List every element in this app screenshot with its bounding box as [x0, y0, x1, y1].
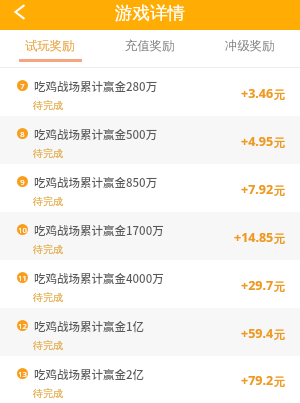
staticText: 吃鸡战场累计赢金280万 [34, 78, 158, 95]
staticText: 11 [18, 273, 27, 283]
button[interactable]: 9 [0, 164, 300, 212]
staticText: 试玩奖励 [25, 38, 75, 54]
staticText: 待完成 [33, 147, 63, 160]
button[interactable]: 11 [0, 260, 300, 308]
staticText: +59.4 [241, 325, 274, 342]
staticText: +7.92 [241, 181, 274, 198]
staticText: 元 [274, 232, 285, 246]
staticText: +4.95 [241, 133, 274, 150]
staticText: 待完成 [33, 243, 63, 256]
staticText: 待完成 [33, 99, 63, 112]
staticText: 吃鸡战场累计赢金1亿 [34, 318, 145, 335]
staticText: 元 [274, 280, 285, 294]
button[interactable]: 8 [0, 116, 300, 164]
staticText: 待完成 [33, 195, 63, 208]
staticText: 吃鸡战场累计赢金500万 [34, 126, 158, 143]
staticText: 充值奖励 [125, 38, 175, 54]
button[interactable]: 13 [0, 356, 300, 403]
staticText: 待完成 [33, 387, 63, 400]
staticText: +29.7 [241, 277, 274, 294]
staticText: 待完成 [33, 339, 63, 352]
button[interactable]: 冲级奖励 [200, 30, 300, 67]
button[interactable]: 7 [0, 68, 300, 116]
staticText: 元 [274, 375, 285, 389]
button[interactable]: 10 [0, 212, 300, 260]
staticText: 元 [274, 88, 285, 102]
staticText: 吃鸡战场累计赢金2亿 [34, 366, 145, 383]
staticText: 吃鸡战场累计赢金4000万 [34, 270, 164, 287]
staticText: 元 [274, 328, 285, 342]
button[interactable]: 试玩奖励 [0, 30, 100, 67]
staticText: +3.46 [241, 85, 274, 102]
button[interactable]: 12 [0, 308, 300, 356]
staticText: 8 [20, 129, 25, 139]
staticText: 元 [274, 184, 285, 198]
staticText: 13 [18, 369, 27, 379]
staticText: +14.85 [234, 229, 274, 246]
staticText: 待完成 [33, 291, 63, 304]
staticText: 7 [20, 81, 25, 91]
staticText: 12 [18, 321, 27, 331]
staticText: 游戏详情 [115, 2, 185, 24]
staticText: 元 [274, 136, 285, 150]
staticText: 冲级奖励 [225, 38, 275, 54]
staticText: +79.2 [241, 372, 274, 389]
staticText: 9 [20, 177, 25, 187]
button[interactable]: 充值奖励 [100, 30, 200, 67]
button[interactable]: Back [4, 0, 34, 30]
staticText: 10 [18, 225, 27, 235]
staticText: 吃鸡战场累计赢金850万 [34, 174, 158, 191]
staticText: 吃鸡战场累计赢金1700万 [34, 222, 164, 239]
